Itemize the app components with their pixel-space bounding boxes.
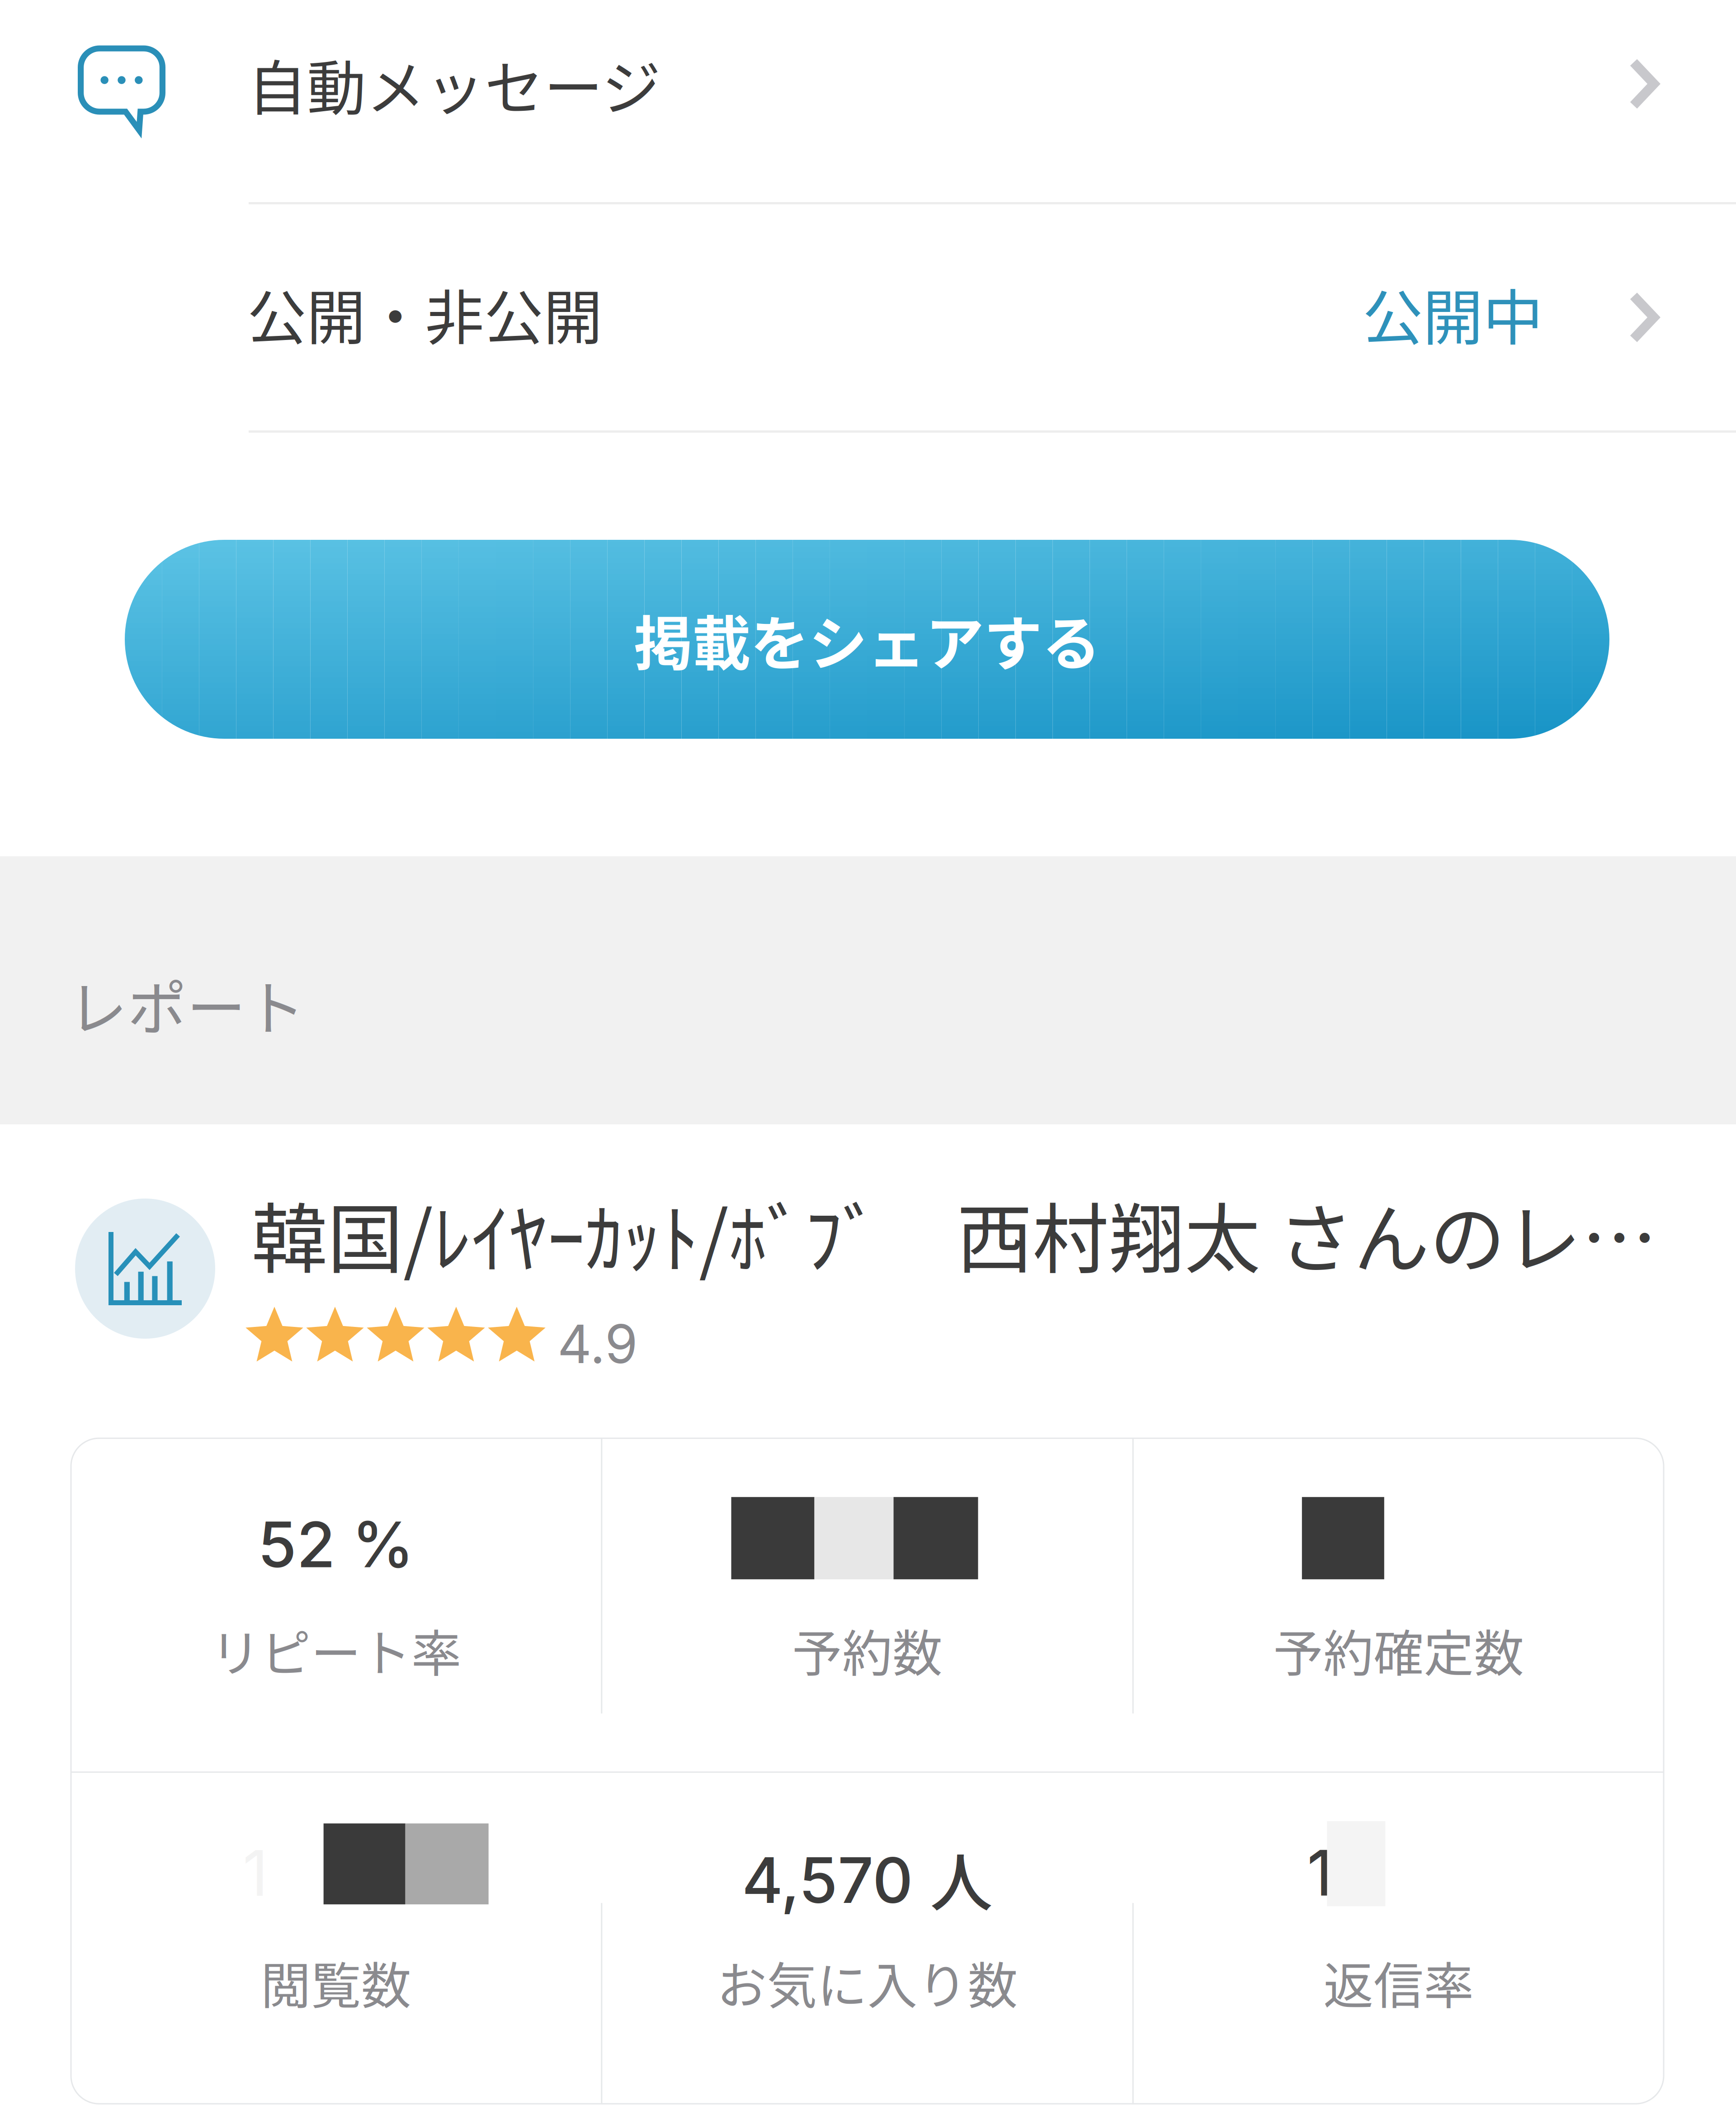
staticText: リピート率 — [211, 1614, 461, 1686]
staticText: 1 — [243, 1835, 268, 1911]
staticText: 公開・非公開 — [247, 271, 603, 356]
staticText: 予約確定数 — [1273, 1614, 1524, 1686]
button[interactable]: 自動メッセージ — [0, 0, 1736, 202]
staticText: 自動メッセージ — [248, 41, 661, 127]
button[interactable]: 掲載をシェアする — [125, 540, 1609, 739]
staticText: レポート — [68, 961, 305, 1047]
button[interactable]: 公開・非公開 — [0, 204, 1736, 430]
staticText: 閲覧数 — [261, 1946, 411, 2018]
staticText: 予約数 — [792, 1614, 943, 1686]
staticText: 掲載をシェアする — [634, 597, 1100, 682]
staticText: 4.9 — [557, 1312, 638, 1376]
staticText: 4,570 人 — [742, 1833, 993, 1924]
staticText: 52 % — [258, 1507, 414, 1582]
staticText: 公開中 — [1363, 270, 1543, 357]
staticText: 1 — [1307, 1835, 1333, 1911]
staticText: 韓国/ﾚｲﾔｰｶｯﾄ/ﾎﾞﾌﾞ 西村翔太 さんのレ… — [251, 1179, 1657, 1289]
button[interactable]: 韓国/ﾚｲﾔｰｶｯﾄ/ﾎﾞﾌﾞ 西村翔太 さんのレ… — [0, 1124, 1736, 1438]
staticText: 返信率 — [1323, 1946, 1474, 2018]
staticText: お気に入り数 — [717, 1946, 1018, 2018]
